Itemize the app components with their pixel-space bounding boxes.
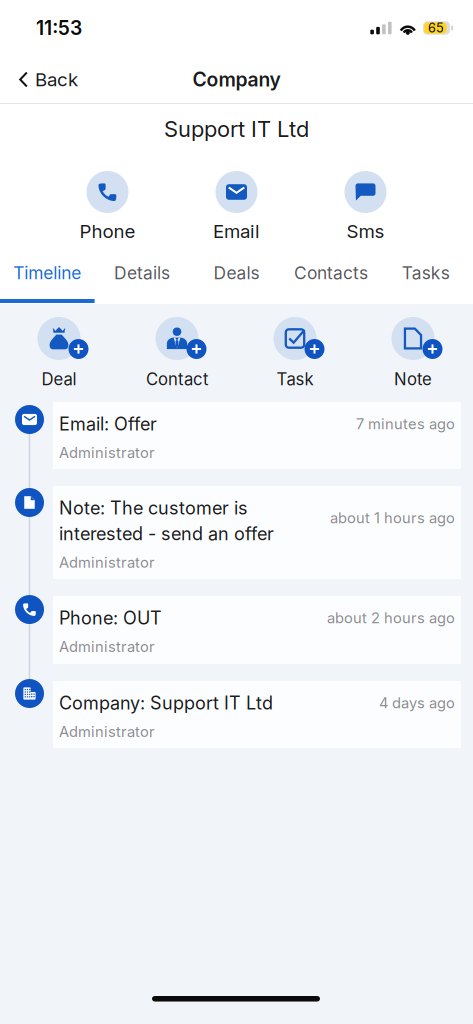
staticText: 7 minutes ago (356, 415, 455, 433)
staticText: Timeline (13, 262, 81, 283)
staticText: Support IT Ltd (164, 116, 309, 142)
button[interactable]: Details (95, 261, 189, 303)
staticText: Deal (41, 369, 76, 389)
staticText: Company: Support IT Ltd (59, 692, 273, 714)
button[interactable]: Note: The customer is (53, 486, 461, 579)
staticText: Phone: OUT (59, 607, 162, 629)
button[interactable]: Phone (43, 171, 172, 243)
button[interactable]: Task (236, 317, 354, 389)
staticText: 65 (428, 20, 444, 36)
button[interactable]: Note (354, 317, 472, 389)
staticText: Sms (346, 220, 384, 243)
button[interactable]: Timeline (0, 261, 95, 303)
staticText: about 2 hours ago (327, 609, 455, 627)
button[interactable]: Tasks (378, 261, 473, 303)
staticText: Contacts (294, 262, 368, 283)
staticText: Deals (213, 262, 259, 283)
staticText: Phone (79, 220, 135, 243)
staticText: Contact (146, 369, 208, 389)
button[interactable]: Contact (118, 317, 236, 389)
staticText: about 1 hours ago (330, 509, 455, 527)
staticText: Note: The customer is (59, 497, 248, 519)
staticText: Details (114, 262, 170, 283)
button[interactable]: Deal (0, 317, 118, 389)
button[interactable]: Contacts (284, 261, 378, 303)
staticText: Administrator (59, 554, 155, 571)
staticText: Email (213, 220, 260, 243)
staticText: Task (276, 369, 313, 389)
staticText: Back (35, 68, 78, 91)
staticText: Note (394, 369, 432, 389)
staticText: 4 days ago (379, 694, 455, 712)
button[interactable]: Phone: OUT (53, 596, 461, 664)
staticText: Administrator (59, 444, 155, 461)
staticText: Tasks (402, 262, 450, 283)
staticText: Administrator (59, 723, 155, 740)
staticText: Email: Offer (59, 413, 157, 435)
staticText: interested - send an offer (59, 523, 274, 545)
staticText: Administrator (59, 638, 155, 655)
button[interactable]: Email (172, 171, 301, 243)
button[interactable]: Deals (189, 261, 284, 303)
button[interactable]: Company: Support IT Ltd (53, 681, 461, 748)
staticText: Company (192, 68, 280, 91)
button[interactable]: Email: Offer (53, 402, 461, 469)
staticText: 11:53 (36, 16, 82, 40)
button[interactable]: Sms (301, 171, 430, 243)
button[interactable]: Back (0, 56, 90, 102)
